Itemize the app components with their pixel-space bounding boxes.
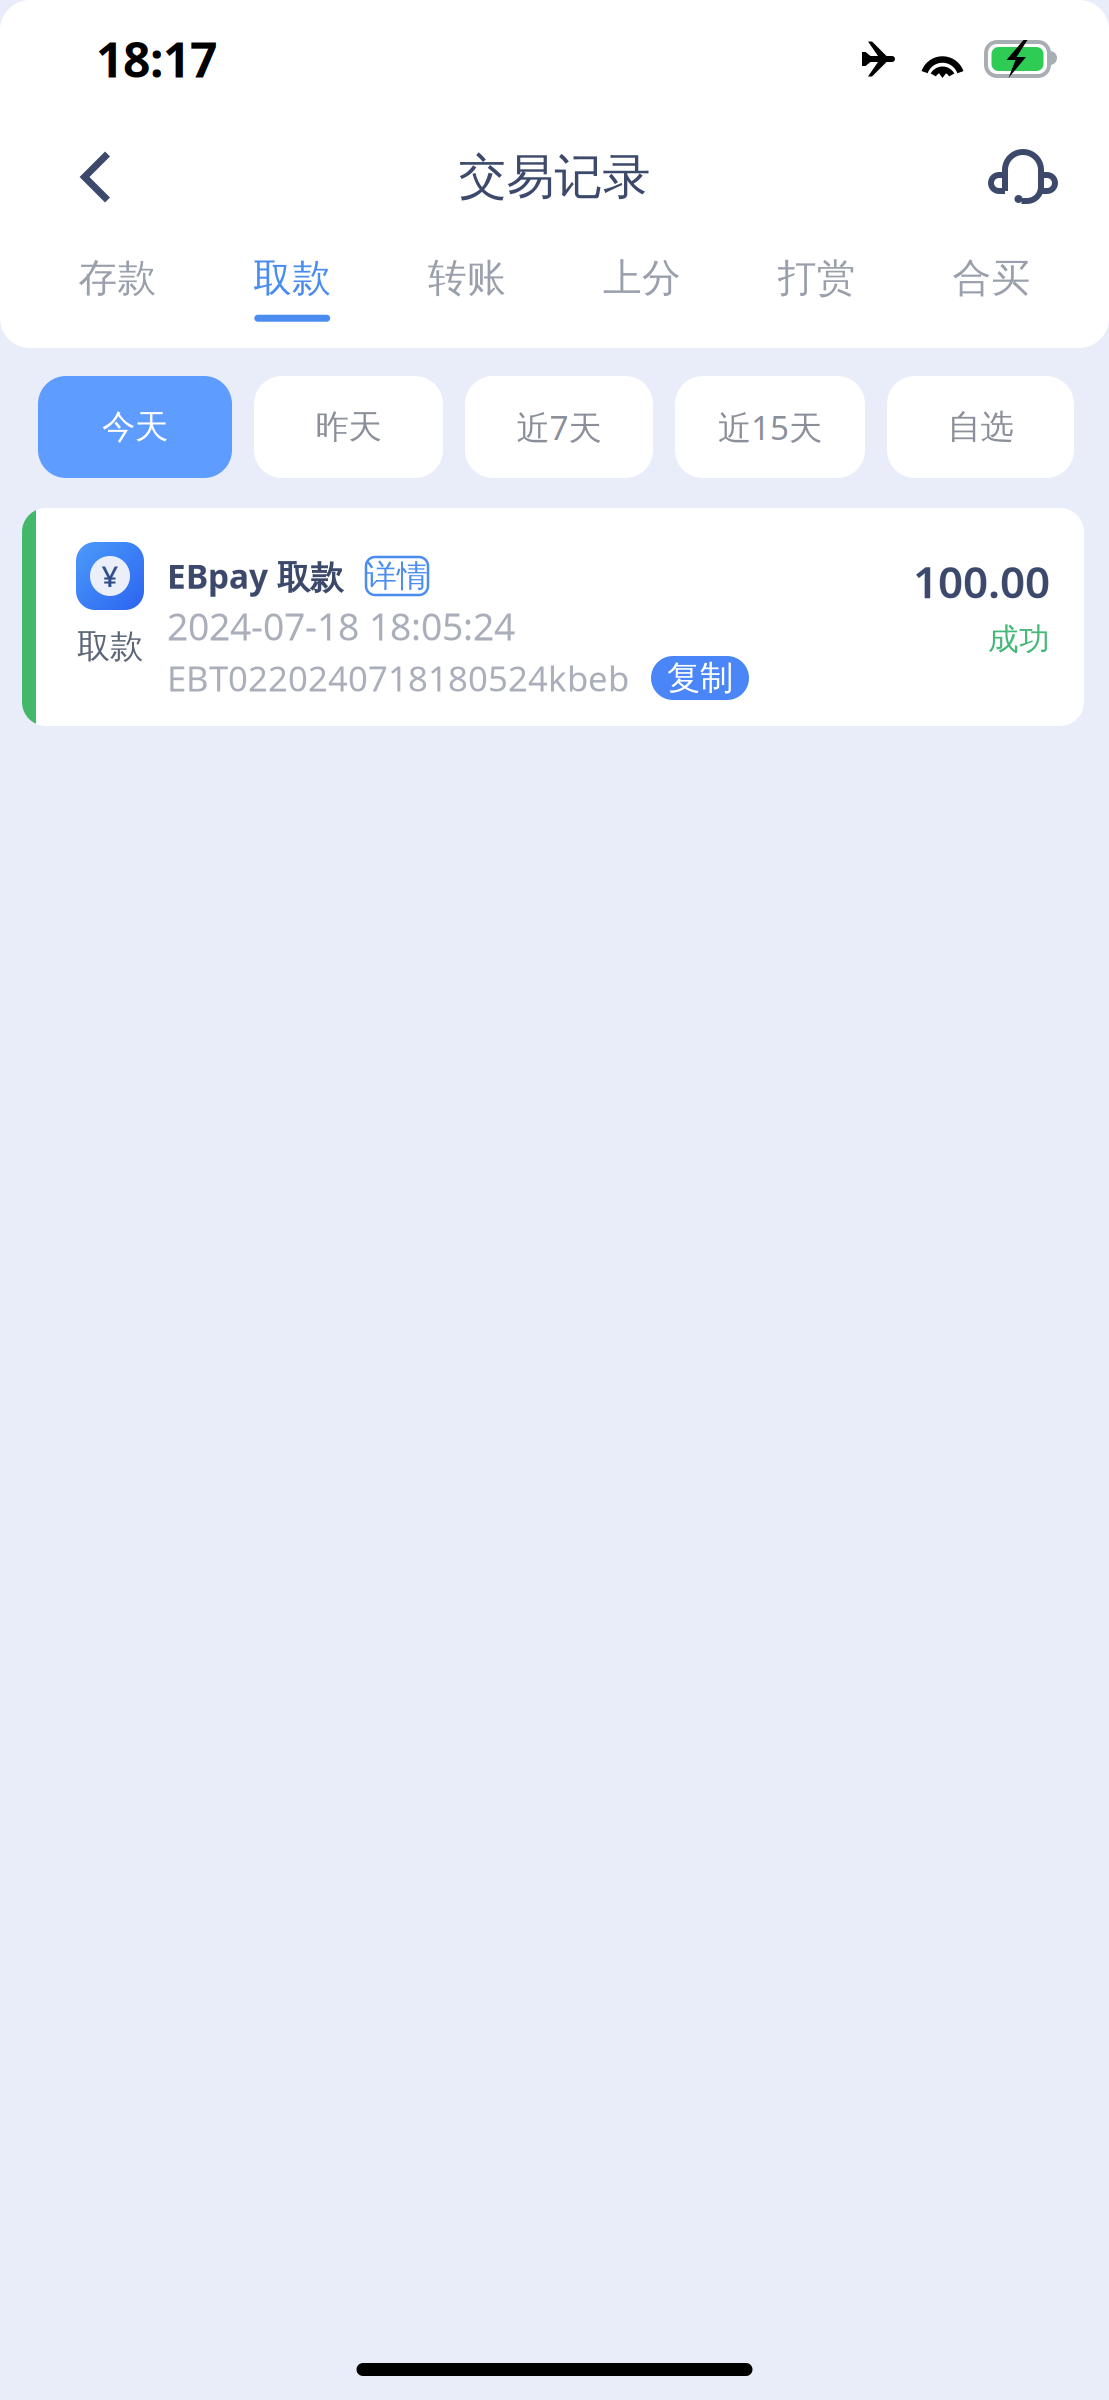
button[interactable]: 自选	[887, 376, 1074, 478]
button[interactable]: 今天	[38, 376, 232, 478]
button[interactable]: 存款	[30, 254, 205, 322]
button[interactable]: 打赏	[729, 254, 904, 322]
staticText: 今天	[102, 406, 168, 447]
staticText: 成功	[988, 620, 1050, 658]
staticText: EBpay 取款	[167, 554, 343, 598]
staticText: 复制	[667, 657, 733, 698]
staticText: 取款	[253, 254, 331, 302]
button[interactable]: 上分	[554, 254, 729, 322]
staticText: 自选	[947, 406, 1013, 447]
staticText: 上分	[603, 254, 681, 302]
button[interactable]: 近7天	[465, 376, 653, 478]
staticText: 2024-07-18 18:05:24	[167, 601, 515, 651]
button[interactable]: Back	[30, 127, 162, 227]
button[interactable]: 转账	[380, 254, 554, 322]
staticText: 转账	[428, 254, 506, 302]
button[interactable]: 合买	[904, 254, 1079, 322]
staticText: 近7天	[516, 405, 601, 449]
staticText: ¥	[101, 556, 118, 595]
button[interactable]: Customer service	[969, 127, 1079, 227]
staticText: EBT0220240718180524kbeb	[167, 655, 629, 701]
staticText: 18:17	[96, 27, 217, 91]
staticText: 打赏	[778, 254, 856, 302]
button[interactable]: 取款	[205, 254, 380, 322]
staticText: 近15天	[718, 405, 822, 449]
staticText: 详情	[366, 557, 428, 595]
button[interactable]: 详情	[366, 557, 428, 595]
button[interactable]: 复制	[651, 656, 749, 700]
staticText: 取款	[77, 626, 143, 667]
staticText: 存款	[78, 254, 156, 302]
button[interactable]: 昨天	[254, 376, 443, 478]
staticText: 交易记录	[458, 147, 650, 206]
staticText: 合买	[953, 254, 1031, 302]
button[interactable]: 近15天	[675, 376, 865, 478]
staticText: 100.00	[913, 552, 1050, 610]
staticText: 昨天	[315, 406, 381, 447]
